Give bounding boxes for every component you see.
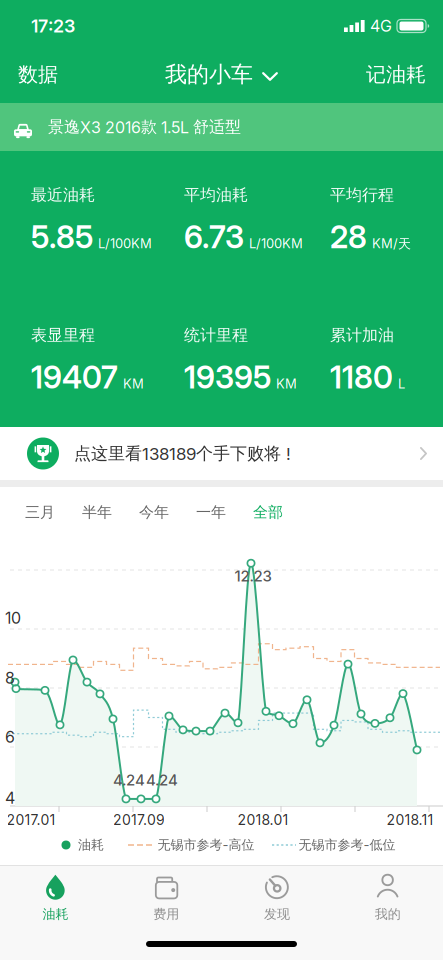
staticText: 油耗 <box>42 906 68 922</box>
staticText: 三月 <box>25 503 55 521</box>
staticText: 19407 <box>31 359 118 395</box>
staticText: 2017.01 <box>6 812 55 828</box>
staticText: 12.23 <box>234 567 271 585</box>
staticText: 10 <box>5 609 21 627</box>
staticText: L/100KM <box>98 236 152 251</box>
staticText: 4 <box>5 789 15 807</box>
button[interactable]: 一年 <box>196 503 226 521</box>
button[interactable]: 半年 <box>82 503 112 521</box>
staticText: 2017.09 <box>113 812 165 828</box>
button[interactable]: 数据 <box>18 62 58 87</box>
button[interactable]: 发现 <box>221 871 332 925</box>
staticText: 费用 <box>153 906 179 922</box>
staticText: 4.24 <box>113 771 145 789</box>
staticText: 统计里程 <box>184 325 248 345</box>
staticText: 平均行程 <box>330 185 394 205</box>
staticText: L/100KM <box>249 236 303 251</box>
staticText: 5.85 <box>31 219 93 255</box>
staticText: 累计加油 <box>330 325 394 345</box>
staticText: 我的 <box>375 906 401 922</box>
staticText: 景逸X3 2016款 1.5L 舒适型 <box>48 117 241 137</box>
button[interactable]: 记油耗 <box>366 62 426 87</box>
staticText: 油耗 <box>78 837 104 853</box>
staticText: 无锡市参考-低位 <box>298 837 395 853</box>
staticText: 我的小车 <box>165 61 253 88</box>
staticText: 记油耗 <box>366 62 426 87</box>
staticText: 28 <box>330 219 367 255</box>
staticText: 19395 <box>184 359 271 395</box>
button[interactable]: 我的小车 <box>165 61 278 88</box>
staticText: KM/天 <box>372 236 411 252</box>
staticText: 发现 <box>264 906 290 922</box>
staticText: 平均油耗 <box>184 185 248 205</box>
button[interactable]: 三月 <box>25 503 55 521</box>
button[interactable]: 景逸X3 2016款 1.5L 舒适型 <box>0 103 443 151</box>
staticText: 4G <box>370 17 392 35</box>
staticText: 2018.01 <box>237 812 288 828</box>
staticText: KM <box>123 376 144 391</box>
staticText: L <box>398 376 405 391</box>
staticText: 8 <box>5 669 15 687</box>
button[interactable]: 全部 <box>253 503 283 521</box>
staticText: 一年 <box>196 503 226 521</box>
button[interactable]: 费用 <box>111 871 222 925</box>
staticText: 半年 <box>82 503 112 521</box>
staticText: 6.73 <box>184 219 244 255</box>
staticText: 4.24 <box>146 771 178 789</box>
staticText: 1180 <box>330 359 393 395</box>
staticText: 17:23 <box>31 15 75 37</box>
staticText: 无锡市参考-高位 <box>157 837 254 853</box>
staticText: 点这里看138189个手下败将 ! <box>74 443 291 464</box>
button[interactable]: 我的 <box>332 871 443 925</box>
staticText: 2018.11 <box>386 812 433 828</box>
staticText: 全部 <box>253 503 283 521</box>
staticText: KM <box>276 376 297 391</box>
staticText: 6 <box>5 728 15 746</box>
staticText: 最近油耗 <box>31 185 95 205</box>
button[interactable]: 油耗 <box>0 871 111 925</box>
staticText: 表显里程 <box>31 325 95 345</box>
staticText: 今年 <box>139 503 169 521</box>
button[interactable]: 今年 <box>139 503 169 521</box>
button[interactable]: 点这里看138189个手下败将 ! <box>0 427 443 480</box>
staticText: 数据 <box>18 62 58 87</box>
